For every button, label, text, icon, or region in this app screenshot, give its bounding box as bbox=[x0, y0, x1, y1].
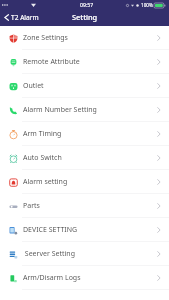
staticText: Alarm Number Setting bbox=[23, 105, 97, 115]
button[interactable]: Outlet bbox=[0, 74, 169, 98]
staticText: Setting bbox=[72, 12, 98, 22]
button[interactable]: Remote Attribute bbox=[0, 50, 169, 74]
button[interactable]: Alarm Number Setting bbox=[0, 98, 169, 122]
staticText: Arm Timing bbox=[23, 129, 62, 139]
staticText: T2 Alarm bbox=[11, 13, 39, 22]
button[interactable]: DEVICE SETTING bbox=[0, 218, 169, 242]
staticText: Seerver Setting bbox=[23, 249, 75, 259]
staticText: Outlet bbox=[23, 81, 44, 91]
staticText: Zone Settings bbox=[23, 33, 68, 43]
staticText: Arm/Disarm Logs bbox=[23, 273, 81, 283]
staticText: 09:57 bbox=[80, 1, 94, 8]
staticText: DEVICE SETTING bbox=[23, 225, 78, 235]
staticText: 100% bbox=[141, 2, 153, 8]
button[interactable]: Auto Switch bbox=[0, 146, 169, 170]
staticText: Parts bbox=[23, 201, 40, 211]
staticText: Alarm setting bbox=[23, 177, 68, 187]
button[interactable]: Alarm setting bbox=[0, 170, 169, 194]
button[interactable]: Parts bbox=[0, 194, 169, 218]
staticText: Remote Attribute bbox=[23, 57, 80, 67]
button[interactable]: Back to T2 Alarm bbox=[0, 12, 42, 25]
button[interactable]: Seerver Setting bbox=[0, 242, 169, 266]
staticText: Auto Switch bbox=[23, 153, 62, 163]
button[interactable]: Arm Timing bbox=[0, 122, 169, 146]
button[interactable]: Arm/Disarm Logs bbox=[0, 266, 169, 290]
button[interactable]: Zone Settings bbox=[0, 26, 169, 50]
